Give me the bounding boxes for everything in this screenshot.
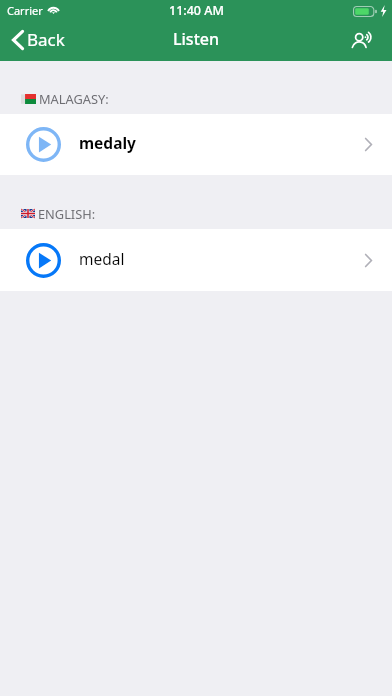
staticText: medal xyxy=(79,248,125,269)
staticText: MALAGASY: xyxy=(39,90,109,107)
staticText: medaly xyxy=(79,132,136,153)
staticText: Listen xyxy=(173,28,219,50)
button[interactable]: Back xyxy=(0,22,77,61)
staticText: ENGLISH: xyxy=(38,205,96,222)
staticText: 11:40 AM xyxy=(169,2,224,19)
button[interactable]: medaly xyxy=(0,114,392,175)
staticText: Carrier xyxy=(7,3,43,18)
staticText: Back xyxy=(27,28,65,51)
button[interactable]: medal xyxy=(0,229,392,291)
button[interactable]: Voice over xyxy=(344,22,392,61)
